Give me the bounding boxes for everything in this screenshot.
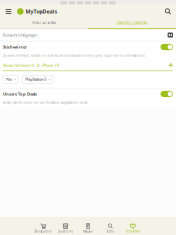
staticText: MyTopDeals bbox=[25, 8, 57, 15]
staticText: Schnäppchen bbox=[34, 230, 52, 233]
button[interactable]: Stichwort hinzufügen bbox=[169, 63, 173, 67]
button[interactable]: Top Deals aktivieren bbox=[160, 91, 173, 97]
staticText: Neues Stichwort (z. B. iPhone 13) bbox=[3, 62, 59, 68]
staticText: Gutscheine bbox=[58, 230, 74, 233]
button[interactable]: Suche bbox=[99, 217, 122, 235]
staticText: × bbox=[48, 77, 50, 82]
button[interactable]: Suche bbox=[160, 5, 176, 17]
button[interactable]: Gutscheine bbox=[54, 217, 77, 235]
staticText: EINSTELLUNGEN bbox=[117, 20, 147, 25]
staticText: Stichwörter bbox=[3, 44, 27, 50]
staticText: Erhalte täglich unsere von der Redaktion… bbox=[3, 101, 88, 104]
button[interactable]: Menü bbox=[0, 5, 17, 17]
button[interactable]: Magazin bbox=[77, 217, 99, 235]
button[interactable]: EINSTELLUNGEN bbox=[88, 17, 176, 28]
button[interactable]: DEAL-ALARM bbox=[0, 17, 88, 28]
button[interactable]: PS5 bbox=[3, 75, 18, 83]
button[interactable]: MyTopDeals bbox=[17, 8, 57, 15]
staticText: Magazin bbox=[83, 230, 93, 233]
button[interactable]: Stichwörter aktivieren bbox=[160, 44, 173, 50]
staticText: Unsere Top Deals bbox=[3, 91, 37, 97]
staticText: PlayStation 5 bbox=[25, 77, 46, 82]
button[interactable]: PlayStation 5 bbox=[23, 75, 53, 83]
staticText: Suche bbox=[106, 230, 114, 233]
staticText: Du wirst informiert, sobald ein Deal mit… bbox=[3, 54, 146, 57]
staticText: × bbox=[14, 77, 16, 82]
staticText: Benachrichtigungen bbox=[3, 32, 37, 38]
staticText: PS5 bbox=[6, 77, 12, 82]
staticText: Deal-Alarm bbox=[126, 230, 140, 233]
staticText: DEAL-ALARM bbox=[31, 20, 56, 25]
button[interactable]: Benachrichtigungseinstellungen bbox=[168, 32, 173, 37]
button[interactable]: Deal-Alarm bbox=[122, 217, 144, 235]
button[interactable]: Schnäppchen bbox=[32, 217, 54, 235]
